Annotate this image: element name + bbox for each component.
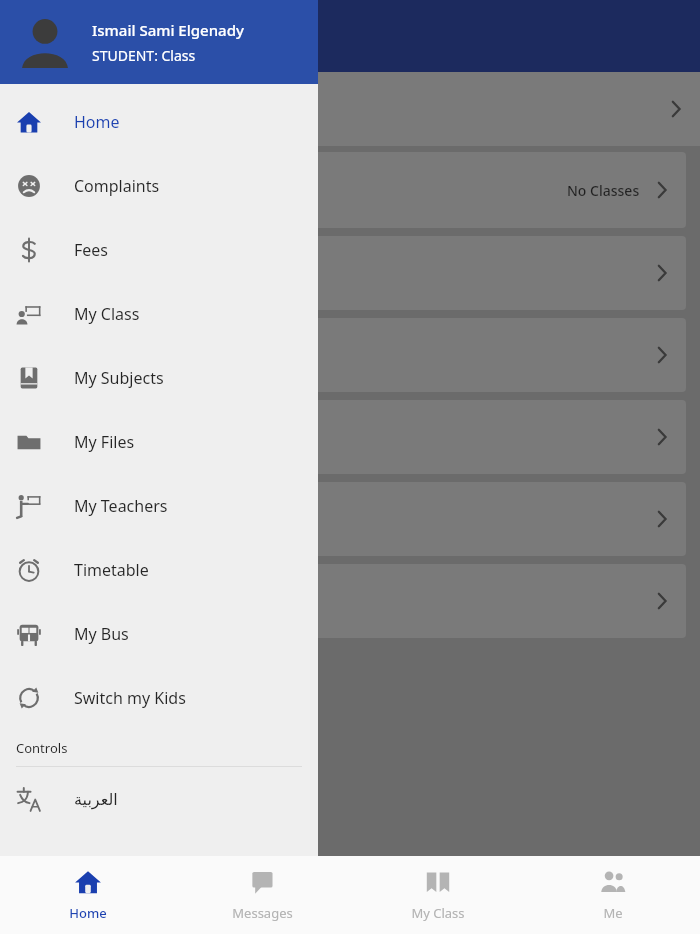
staticText: Me: [603, 904, 623, 922]
button[interactable]: My Teachers: [0, 474, 318, 538]
button[interactable]: My Class: [0, 282, 318, 346]
button[interactable]: Switch my Kids: [0, 666, 318, 730]
staticText: My Class: [411, 904, 465, 922]
button[interactable]: [0, 72, 700, 146]
staticText: العربية: [74, 790, 118, 809]
button[interactable]: [0, 564, 686, 638]
staticText: Timetable: [74, 559, 149, 581]
staticText: Controls: [16, 739, 68, 757]
staticText: No Classes: [567, 181, 640, 200]
button[interactable]: Fees: [0, 218, 318, 282]
staticText: My Class: [74, 303, 140, 325]
staticText: Ismail Sami Elgenady: [92, 20, 244, 40]
staticText: Complaints: [74, 175, 160, 197]
button[interactable]: [0, 831, 318, 895]
button[interactable]: [0, 400, 686, 474]
button[interactable]: [0, 318, 686, 392]
button[interactable]: My Files: [0, 410, 318, 474]
button[interactable]: Home: [0, 90, 318, 154]
button[interactable]: Timetable: [0, 538, 318, 602]
staticText: My Subjects: [74, 367, 164, 389]
button[interactable]: My Bus: [0, 602, 318, 666]
button[interactable]: Complaints: [0, 154, 318, 218]
button[interactable]: العربية: [0, 767, 318, 831]
staticText: My Files: [74, 431, 135, 453]
staticText: Home: [74, 111, 120, 133]
button[interactable]: [0, 236, 686, 310]
button[interactable]: Me: [525, 856, 700, 934]
button[interactable]: No Classes: [0, 152, 686, 228]
staticText: Messages: [232, 904, 293, 922]
staticText: My Teachers: [74, 495, 168, 517]
button[interactable]: My Class: [350, 856, 525, 934]
button[interactable]: [0, 482, 686, 556]
staticText: Switch my Kids: [74, 687, 186, 709]
staticText: STUDENT: Class: [92, 46, 196, 65]
button[interactable]: My Subjects: [0, 346, 318, 410]
staticText: Fees: [74, 239, 109, 261]
button[interactable]: Home: [0, 856, 175, 934]
button[interactable]: Ismail Sami Elgenady: [0, 0, 318, 84]
button[interactable]: Messages: [175, 856, 350, 934]
staticText: My Bus: [74, 623, 129, 645]
staticText: Home: [69, 904, 107, 922]
